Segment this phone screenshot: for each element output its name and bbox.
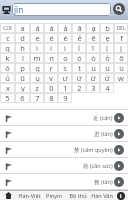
button[interactable]: c: [0, 33, 15, 43]
button[interactable]: ẹ: [100, 33, 114, 43]
button[interactable]: Dictionary: [1, 4, 11, 14]
button[interactable]: e: [30, 33, 44, 43]
button[interactable]: s: [58, 63, 72, 73]
staticText: e: [35, 33, 40, 43]
button[interactable]: b: [100, 23, 114, 33]
staticText: s: [63, 63, 67, 73]
button[interactable]: k: [0, 53, 15, 63]
button[interactable]: Bookmark: [4, 178, 12, 186]
button[interactable]: ú: [100, 63, 114, 73]
button[interactable]: ư: [58, 73, 72, 83]
staticText: ị: [106, 43, 108, 53]
button[interactable]: ị: [100, 43, 114, 53]
button[interactable]: ủ: [0, 73, 15, 83]
button[interactable]: m: [30, 53, 44, 63]
button[interactable]: Open entry: [114, 177, 124, 187]
button[interactable]: Bookmark: [4, 162, 12, 170]
button[interactable]: Search: [113, 3, 125, 15]
staticText: ĩ: [92, 43, 94, 53]
button[interactable]: y: [15, 83, 30, 93]
button[interactable]: n: [44, 53, 58, 63]
button[interactable]: z: [30, 83, 44, 93]
button[interactable]: 6: [15, 93, 30, 103]
button[interactable]: ì: [58, 43, 72, 53]
button[interactable]: o: [58, 53, 72, 63]
button[interactable]: ừ: [86, 73, 100, 83]
button[interactable]: 8: [44, 93, 58, 103]
button[interactable]: Info: [114, 191, 128, 200]
button[interactable]: Bookmark: [4, 146, 12, 154]
button[interactable]: Open entry: [114, 113, 124, 123]
button[interactable]: Hán-Việt: [17, 191, 42, 200]
button[interactable]: ả: [58, 23, 72, 33]
button[interactable]: 7: [30, 93, 44, 103]
staticText: t: [78, 63, 81, 73]
button[interactable]: ứ: [72, 73, 86, 83]
button[interactable]: Bookmark: [0, 126, 128, 141]
button[interactable]: Bookmark: [0, 174, 128, 189]
button[interactable]: a: [15, 23, 30, 33]
staticText: 2: [77, 83, 82, 93]
button[interactable]: ạ: [86, 23, 100, 33]
button[interactable]: Pinyin: [42, 191, 66, 200]
button[interactable]: í: [44, 43, 58, 53]
button[interactable]: 9: [58, 93, 72, 103]
button[interactable]: á: [30, 23, 44, 33]
button[interactable]: ũ: [15, 73, 30, 83]
button[interactable]: 4: [100, 83, 114, 93]
button[interactable]: x: [0, 83, 15, 93]
button[interactable]: à: [44, 23, 58, 33]
staticText: ử: [104, 73, 110, 83]
button[interactable]: h: [15, 43, 30, 53]
button[interactable]: d: [15, 33, 30, 43]
button[interactable]: ô: [0, 63, 15, 73]
button[interactable]: ụ: [30, 73, 44, 83]
button[interactable]: l: [15, 53, 30, 63]
button[interactable]: f: [114, 33, 128, 43]
button[interactable]: Hán Văn: [90, 191, 114, 200]
button[interactable]: ã: [72, 23, 86, 33]
button[interactable]: DEL: [114, 23, 128, 33]
button[interactable]: w: [114, 73, 128, 83]
button[interactable]: Open entry: [114, 161, 124, 171]
button[interactable]: Home: [0, 191, 17, 200]
button[interactable]: 1: [58, 83, 72, 93]
button[interactable]: u: [86, 63, 100, 73]
button[interactable]: jìn: [12, 3, 111, 16]
button[interactable]: p: [15, 63, 30, 73]
button[interactable]: ẽ: [86, 33, 100, 43]
button[interactable]: Bookmark: [0, 142, 128, 157]
button[interactable]: q: [30, 63, 44, 73]
button[interactable]: 3: [86, 83, 100, 93]
button[interactable]: Bookmark: [0, 158, 128, 173]
button[interactable]: ử: [100, 73, 114, 83]
button[interactable]: Bookmark: [4, 130, 12, 138]
button[interactable]: Bookmark: [4, 114, 12, 122]
button[interactable]: ó: [72, 53, 86, 63]
button[interactable]: 2: [72, 83, 86, 93]
button[interactable]: 0: [44, 83, 58, 93]
button[interactable]: é: [44, 33, 58, 43]
button[interactable]: v: [44, 73, 58, 83]
button[interactable]: r: [44, 63, 58, 73]
button[interactable]: 5: [0, 93, 15, 103]
button[interactable]: Bộ thủ: [66, 191, 90, 200]
button[interactable]: j: [114, 43, 128, 53]
button[interactable]: ù: [114, 63, 128, 73]
button[interactable]: i: [30, 43, 44, 53]
button[interactable]: Open entry: [114, 129, 124, 139]
button[interactable]: g: [0, 43, 15, 53]
button[interactable]: ỉ: [72, 43, 86, 53]
button[interactable]: ẻ: [72, 33, 86, 43]
button[interactable]: ỏ: [100, 53, 114, 63]
staticText: ả: [63, 23, 68, 33]
button[interactable]: è: [58, 33, 72, 43]
button[interactable]: t: [72, 63, 86, 73]
button[interactable]: ĩ: [86, 43, 100, 53]
button[interactable]: ò: [86, 53, 100, 63]
button[interactable]: CLR: [0, 23, 15, 33]
staticText: n: [49, 53, 54, 63]
button[interactable]: Bookmark: [0, 110, 128, 125]
button[interactable]: õ: [114, 53, 128, 63]
button[interactable]: Open entry: [114, 145, 124, 155]
